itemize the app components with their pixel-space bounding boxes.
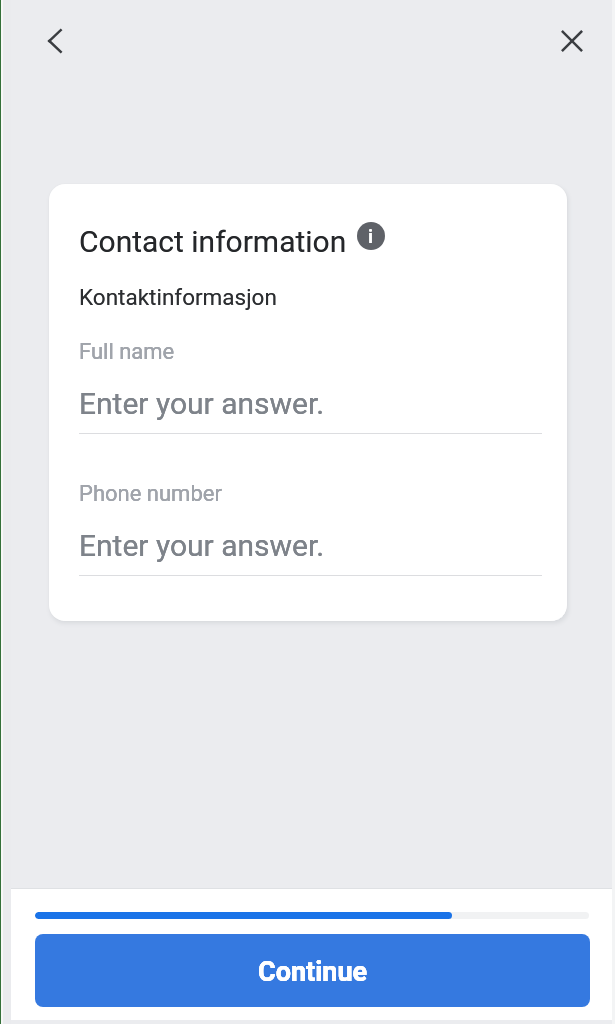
- staticText: Enter your answer.: [79, 528, 325, 563]
- button[interactable]: Close: [550, 19, 594, 63]
- staticText: i: [368, 225, 374, 247]
- staticText: Kontaktinformasjon: [79, 284, 277, 310]
- button[interactable]: Continue: [35, 934, 590, 1007]
- staticText: Continue: [258, 956, 368, 988]
- staticText: Phone number: [79, 481, 222, 507]
- button[interactable]: Enter your answer.: [79, 386, 542, 434]
- button[interactable]: Enter your answer.: [79, 528, 542, 576]
- staticText: Full name: [79, 339, 175, 365]
- button[interactable]: More information: [357, 222, 385, 250]
- staticText: Enter your answer.: [79, 386, 325, 421]
- staticText: Enter your answer.: [79, 386, 325, 421]
- button[interactable]: Back: [33, 19, 77, 63]
- staticText: Full name: [79, 339, 175, 365]
- staticText: Enter your answer.: [79, 528, 325, 563]
- staticText: Kontaktinformasjon: [79, 284, 277, 310]
- staticText: Continue: [258, 956, 368, 988]
- staticText: Phone number: [79, 481, 222, 507]
- staticText: Contact information: [79, 224, 347, 259]
- staticText: Contact information: [79, 224, 347, 259]
